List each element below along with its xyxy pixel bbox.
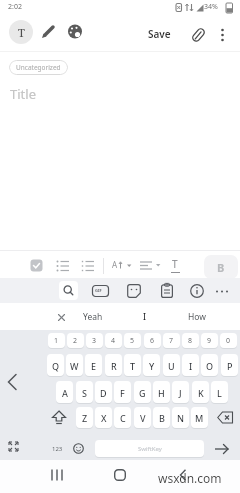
button[interactable]: L (211, 381, 228, 404)
button[interactable]: N (172, 407, 189, 429)
staticText: B (217, 260, 225, 275)
staticText: 34% (204, 2, 218, 12)
button[interactable]: T (124, 354, 141, 377)
button[interactable]: How (182, 309, 212, 325)
button[interactable] (51, 410, 67, 425)
button[interactable] (59, 281, 78, 300)
button[interactable] (56, 260, 70, 272)
button[interactable] (219, 28, 226, 42)
button[interactable]: D (95, 381, 112, 404)
button[interactable] (7, 440, 20, 453)
staticText: 123 (52, 445, 63, 453)
staticText: H (158, 387, 165, 399)
staticText: N (177, 412, 184, 424)
button[interactable]: T (9, 20, 33, 44)
staticText: T (18, 25, 25, 40)
button[interactable]: W (66, 354, 83, 377)
button[interactable]: I (182, 354, 199, 377)
staticText: Uncategorized (16, 63, 61, 72)
button[interactable]: X (95, 407, 112, 429)
button[interactable]: G (134, 381, 151, 404)
button[interactable]: M (191, 407, 208, 429)
button[interactable]: B (153, 407, 170, 429)
button[interactable]: F (114, 381, 131, 404)
button[interactable]: K (192, 381, 209, 404)
button[interactable]: J (172, 381, 189, 404)
button[interactable]: 5 (124, 333, 141, 349)
staticText: S (82, 387, 87, 399)
staticText: Title (10, 85, 36, 103)
button[interactable]: 123 (46, 440, 68, 457)
button[interactable] (161, 283, 173, 298)
button[interactable]: 7 (163, 333, 180, 349)
staticText: O (206, 360, 214, 372)
button[interactable]: Uncategorized (9, 60, 68, 75)
button[interactable] (30, 259, 43, 272)
staticText: wsxdn.com (158, 470, 222, 486)
button[interactable]: Y (143, 354, 160, 377)
button[interactable] (213, 443, 231, 455)
button[interactable] (51, 469, 63, 481)
button[interactable]: 0 (220, 333, 237, 349)
button[interactable] (119, 261, 133, 271)
button[interactable]: R (105, 354, 122, 377)
staticText: 2:02 (8, 2, 22, 12)
button[interactable]: 1 (48, 333, 65, 349)
staticText: How (188, 311, 206, 323)
staticText: Z (82, 412, 88, 424)
button[interactable] (81, 260, 95, 272)
button[interactable]: 6 (144, 333, 161, 349)
button[interactable]: GIF (92, 285, 109, 297)
button[interactable] (190, 284, 204, 298)
staticText: 7 (169, 336, 174, 346)
button[interactable]: C (114, 407, 131, 429)
button[interactable]: O (201, 354, 218, 377)
button[interactable]: 9 (201, 333, 218, 349)
button[interactable]: SwiftKey (95, 440, 204, 458)
button[interactable] (140, 260, 162, 272)
button[interactable] (127, 284, 141, 298)
button[interactable] (191, 27, 206, 43)
staticText: X (101, 412, 107, 424)
button[interactable] (67, 24, 83, 39)
button[interactable]: 8 (182, 333, 199, 349)
staticText: E (91, 360, 97, 372)
button[interactable]: 2 (67, 333, 84, 349)
button[interactable]: Z (76, 407, 93, 429)
button[interactable] (217, 411, 234, 424)
button[interactable] (179, 469, 187, 481)
button[interactable]: Yeah (78, 309, 108, 325)
staticText: I (189, 360, 193, 372)
staticText: 5 (130, 336, 135, 346)
button[interactable]: I (135, 309, 155, 325)
staticText: 0 (226, 336, 231, 346)
staticText: 2 (73, 336, 78, 346)
button[interactable]: U (163, 354, 180, 377)
button[interactable]: B (204, 255, 238, 279)
button[interactable] (6, 373, 19, 391)
button[interactable]: 3 (86, 333, 103, 349)
button[interactable] (41, 24, 56, 39)
button[interactable] (73, 443, 84, 454)
button[interactable]: S (76, 381, 93, 404)
staticText: 8 (188, 336, 193, 346)
button[interactable] (57, 313, 66, 322)
button[interactable]: 4 (105, 333, 122, 349)
staticText: R (111, 360, 117, 372)
staticText: P (227, 360, 233, 372)
button[interactable]: P (221, 354, 238, 377)
staticText: T (172, 257, 178, 271)
button[interactable]: Save (148, 27, 171, 41)
staticText: 9 (207, 336, 212, 346)
staticText: Q (52, 360, 60, 372)
staticText: A (112, 259, 118, 270)
button[interactable]: E (85, 354, 102, 377)
button[interactable]: H (153, 381, 170, 404)
button[interactable]: A (56, 381, 73, 404)
button[interactable] (114, 469, 126, 481)
button[interactable] (215, 289, 229, 294)
staticText: V (140, 412, 146, 424)
button[interactable]: V (134, 407, 151, 429)
button[interactable]: Q (47, 354, 64, 377)
staticText: 1 (54, 336, 59, 346)
